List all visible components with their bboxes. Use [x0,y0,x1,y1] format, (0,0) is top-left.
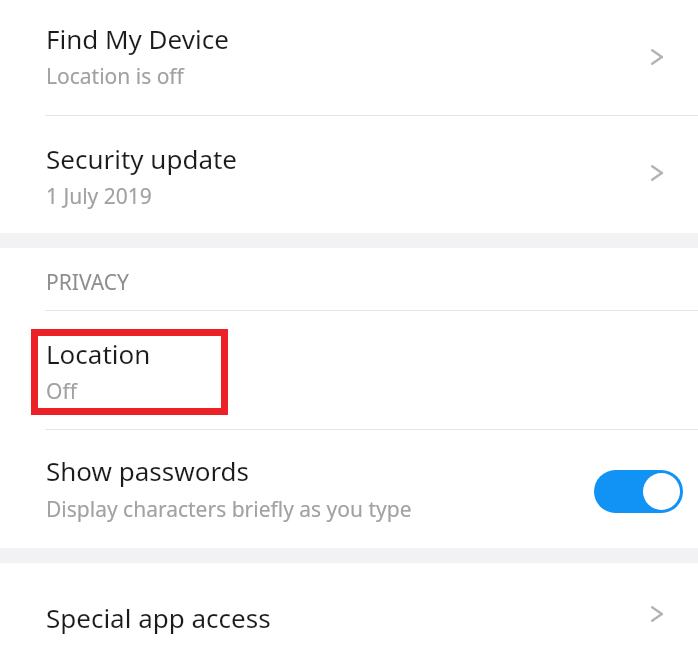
button[interactable]: Show passwords, on [594,470,683,513]
staticText: Security update [46,141,238,176]
other: Open Find My Device [618,0,698,115]
staticText: Location [46,336,151,371]
staticText: 1 July 2019 [46,182,152,211]
staticText: Show passwords [46,453,250,488]
button[interactable]: Show passwords [0,430,698,548]
staticText: Location is off [46,62,184,91]
staticText: Off [46,377,77,406]
button[interactable]: Find My Device [0,0,698,115]
staticText: Display characters briefly as you type [46,495,412,524]
staticText: Find My Device [46,21,229,56]
button[interactable]: Location [0,311,698,429]
staticText: PRIVACY [46,268,129,297]
other: Open Security update [618,116,698,233]
button[interactable]: Special app access [0,563,698,655]
button[interactable]: Security update [0,116,698,233]
staticText: Special app access [46,600,271,635]
other: Open Special app access [618,563,698,655]
